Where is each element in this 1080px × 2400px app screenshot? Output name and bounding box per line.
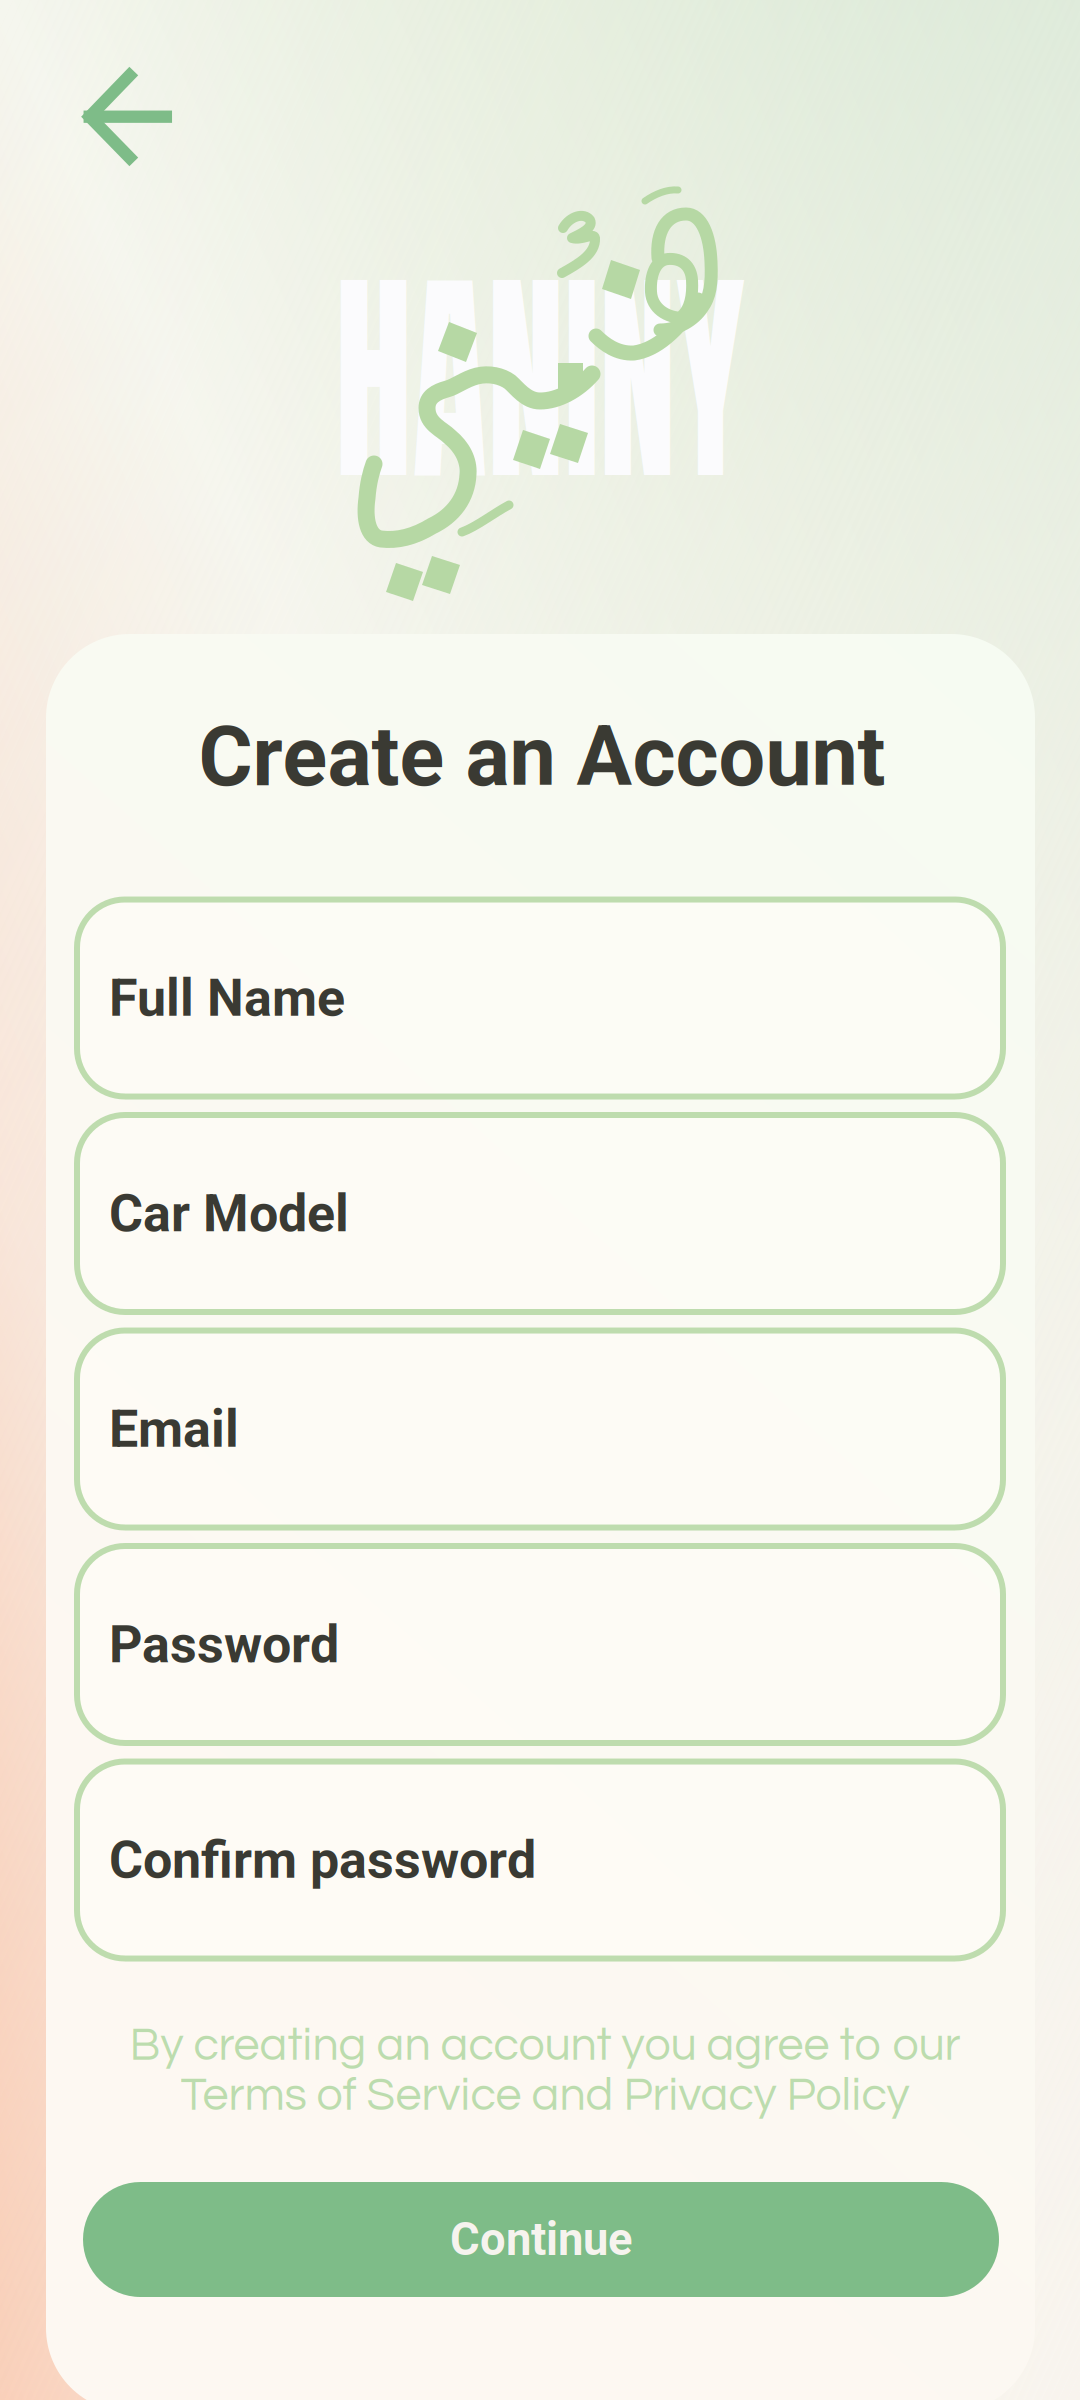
staticText: By creating an account you agree to our — [129, 2022, 960, 2069]
button[interactable]: Full Name — [77, 899, 1003, 1096]
staticText: Password — [109, 1614, 339, 1675]
staticText: Confirm password — [109, 1829, 536, 1890]
staticText: HANINY — [239, 208, 840, 550]
staticText: Email — [109, 1398, 239, 1459]
staticText: Full Name — [109, 967, 345, 1028]
button[interactable]: Password — [77, 1546, 1003, 1743]
button[interactable]: Car Model — [77, 1115, 1003, 1312]
button[interactable]: Back — [51, 41, 202, 192]
button[interactable]: Continue — [83, 2182, 999, 2297]
staticText: Continue — [450, 2213, 632, 2266]
staticText: Car Model — [109, 1183, 349, 1244]
staticText: Create an Account — [198, 709, 885, 805]
staticText: Terms of Service and Privacy Policy — [180, 2071, 909, 2119]
button[interactable]: Confirm password — [77, 1761, 1003, 1958]
button[interactable]: Email — [77, 1330, 1003, 1527]
